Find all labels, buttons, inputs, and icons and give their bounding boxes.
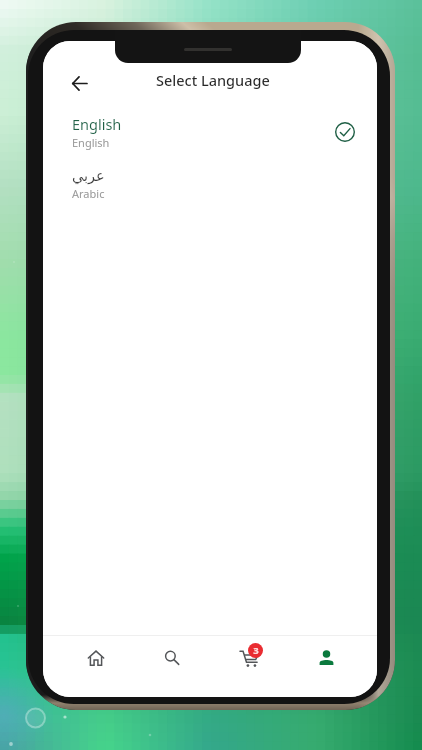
staticText: English	[72, 135, 110, 150]
button[interactable]: عربي	[43, 165, 377, 219]
staticText: 3	[253, 644, 259, 657]
staticText: Select Language	[156, 70, 270, 90]
staticText: عربي	[72, 168, 105, 185]
staticText: English	[72, 114, 122, 134]
button[interactable]: Search	[134, 636, 210, 679]
button[interactable]: Profile	[286, 636, 362, 679]
staticText: Arabic	[72, 186, 105, 201]
button[interactable]: Home	[58, 636, 134, 679]
button[interactable]: English	[43, 111, 377, 165]
button[interactable]: Back	[61, 65, 97, 101]
button[interactable]: Cart, 3 items	[210, 636, 286, 679]
